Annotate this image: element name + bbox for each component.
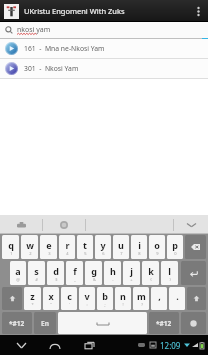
button[interactable]: En bbox=[34, 312, 56, 334]
button[interactable]: . bbox=[169, 287, 185, 310]
staticText: 8 bbox=[138, 251, 141, 256]
staticText: 7 bbox=[120, 251, 123, 256]
button[interactable]: Settings bbox=[181, 312, 206, 334]
staticText: r bbox=[65, 239, 70, 251]
button[interactable]: m bbox=[133, 287, 149, 310]
button[interactable]: z bbox=[24, 287, 41, 310]
button[interactable]: d bbox=[47, 261, 64, 285]
button[interactable]: Hide keyboard bbox=[174, 215, 208, 234]
staticText: " bbox=[50, 302, 52, 307]
staticText: # bbox=[35, 277, 38, 282]
staticText: ! bbox=[122, 302, 124, 307]
button[interactable]: i bbox=[131, 235, 147, 259]
button[interactable]: , bbox=[151, 287, 167, 310]
staticText: *#12 bbox=[156, 319, 172, 328]
button[interactable]: r bbox=[59, 235, 75, 259]
button[interactable]: Backspace bbox=[185, 235, 206, 259]
staticText: w bbox=[26, 239, 34, 251]
staticText: ; bbox=[104, 302, 106, 307]
staticText: b bbox=[102, 290, 108, 302]
staticText: k bbox=[148, 265, 154, 277]
staticText: o bbox=[154, 239, 160, 251]
staticText: 6 bbox=[102, 251, 105, 256]
button[interactable]: e bbox=[40, 235, 57, 259]
button[interactable]: *#12 bbox=[2, 312, 32, 334]
staticText: nkosi yam bbox=[17, 25, 51, 35]
staticText: 1 bbox=[10, 251, 13, 256]
staticText: q bbox=[8, 239, 14, 251]
button[interactable]: w bbox=[21, 235, 38, 259]
staticText: ) bbox=[169, 277, 171, 282]
button[interactable]: Home bbox=[42, 335, 68, 355]
staticText: 301 - Nkosi Yam bbox=[24, 64, 79, 73]
staticText: t bbox=[83, 239, 87, 251]
staticText: ? bbox=[141, 302, 143, 307]
staticText: _ bbox=[74, 277, 76, 282]
button[interactable]: o bbox=[149, 235, 165, 259]
staticText: s bbox=[34, 265, 39, 277]
button[interactable]: a bbox=[10, 261, 26, 285]
button[interactable]: *#12 bbox=[149, 312, 179, 334]
staticText: 5 bbox=[84, 251, 87, 256]
button[interactable]: c bbox=[61, 287, 77, 310]
button[interactable]: v bbox=[79, 287, 95, 310]
staticText: + bbox=[130, 277, 133, 282]
button[interactable]: 301 - Nkosi Yam bbox=[0, 59, 208, 79]
staticText: y bbox=[100, 239, 106, 251]
button[interactable]: Search bbox=[0, 22, 208, 38]
staticText: - bbox=[112, 277, 114, 282]
staticText: 3 bbox=[48, 251, 51, 256]
button[interactable]: f bbox=[66, 261, 83, 285]
staticText: : bbox=[86, 302, 88, 307]
staticText: 12:09 bbox=[160, 340, 181, 351]
button[interactable]: Recent apps bbox=[76, 335, 102, 355]
button[interactable]: Back bbox=[8, 335, 34, 355]
staticText: * bbox=[31, 302, 34, 307]
button[interactable]: y bbox=[95, 235, 111, 259]
staticText: 0 bbox=[174, 251, 177, 256]
staticText: v bbox=[84, 290, 90, 302]
staticText: a bbox=[15, 265, 21, 277]
staticText: f bbox=[73, 265, 77, 277]
other: Search bbox=[5, 26, 13, 34]
button[interactable]: Enter bbox=[181, 261, 206, 285]
button[interactable]: Shift bbox=[187, 287, 206, 310]
staticText: 161 - Mna ne-Nkosi Yam bbox=[24, 44, 105, 53]
button[interactable]: h bbox=[104, 261, 121, 285]
button[interactable]: s bbox=[28, 261, 45, 285]
staticText: j bbox=[130, 265, 133, 277]
staticText: 2 bbox=[29, 251, 32, 256]
button[interactable]: b bbox=[97, 287, 113, 310]
staticText: n bbox=[120, 290, 126, 302]
button[interactable]: x bbox=[43, 287, 59, 310]
button[interactable]: u bbox=[113, 235, 129, 259]
staticText: 4 bbox=[66, 251, 69, 256]
button[interactable]: Emoji bbox=[43, 215, 85, 234]
staticText: . bbox=[176, 290, 179, 302]
button[interactable]: p bbox=[167, 235, 183, 259]
button[interactable]: Shift bbox=[2, 287, 22, 310]
staticText: i bbox=[138, 239, 141, 251]
staticText: & bbox=[93, 277, 96, 282]
staticText: x bbox=[48, 290, 54, 302]
button[interactable]: Space bbox=[58, 312, 147, 334]
staticText: UKristu Engomeni With Zuks bbox=[24, 6, 125, 16]
button[interactable]: More options bbox=[190, 0, 206, 22]
button[interactable]: Clipboard bbox=[0, 215, 42, 234]
button[interactable]: l bbox=[161, 261, 178, 285]
button[interactable]: j bbox=[123, 261, 140, 285]
button[interactable]: g bbox=[85, 261, 102, 285]
staticText: u bbox=[118, 239, 124, 251]
button[interactable]: k bbox=[142, 261, 159, 285]
staticText: m bbox=[137, 290, 146, 302]
staticText: $ bbox=[55, 277, 58, 282]
staticText: 9 bbox=[156, 251, 159, 256]
staticText: En bbox=[41, 319, 49, 328]
staticText: z bbox=[30, 290, 35, 302]
button[interactable]: n bbox=[115, 287, 131, 310]
button[interactable]: 161 - Mna ne-Nkosi Yam bbox=[0, 39, 208, 59]
button[interactable]: q bbox=[2, 235, 19, 259]
button[interactable]: t bbox=[77, 235, 93, 259]
staticText: p bbox=[172, 239, 178, 251]
staticText: @ bbox=[16, 277, 20, 282]
